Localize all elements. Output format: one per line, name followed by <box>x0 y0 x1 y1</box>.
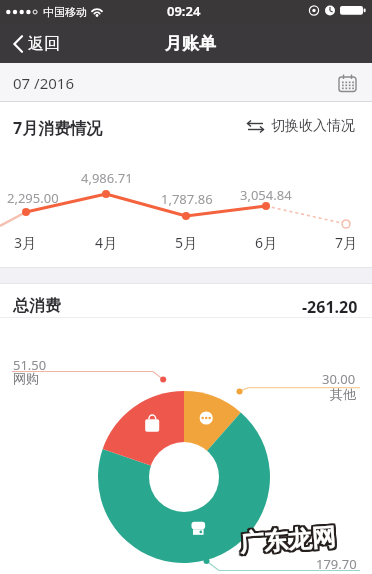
staticText: 7月消费情况 <box>13 117 103 139</box>
staticText: 1,787.86 <box>161 190 213 208</box>
staticText: 179.70 <box>316 555 357 573</box>
button[interactable]: 07 /2016 <box>0 63 372 102</box>
staticText: -261.20 <box>302 296 358 318</box>
staticText: 切换收入情况 <box>271 117 355 135</box>
staticText: 中国移动 <box>43 5 87 19</box>
staticText: 广东龙网 <box>241 521 339 557</box>
staticText: 网购 <box>13 370 39 386</box>
staticText: 7月 <box>335 233 358 252</box>
staticText: 广东龙网 <box>237 524 335 561</box>
staticText: 广东龙网 <box>239 524 337 561</box>
staticText: 07 /2016 <box>13 73 74 93</box>
staticText: 广东龙网 <box>237 520 335 557</box>
button[interactable]: 返回 <box>10 24 60 63</box>
staticText: 其他 <box>330 386 356 402</box>
staticText: 4月 <box>95 233 118 252</box>
staticText: 广东龙网 <box>240 524 338 560</box>
staticText: 广东龙网 <box>241 522 339 558</box>
staticText: 广东龙网 <box>237 522 335 559</box>
staticText: 广东龙网 <box>241 520 339 556</box>
staticText: 广东龙网 <box>237 521 335 558</box>
staticText: 广东龙网 <box>241 523 339 559</box>
staticText: 广东龙网 <box>238 520 336 557</box>
staticText: 2,295.00 <box>7 189 59 207</box>
staticText: 返回 <box>28 34 60 54</box>
staticText: 广东龙网 <box>239 520 337 557</box>
staticText: 3,054.84 <box>240 186 292 204</box>
staticText: 30.00 <box>322 370 356 388</box>
staticText: 广东龙网 <box>240 520 338 556</box>
staticText: 09:24 <box>167 2 201 18</box>
staticText: 广东龙网 <box>237 523 335 560</box>
staticText: 广东龙网 <box>239 522 337 559</box>
staticText: 广东龙网 <box>241 524 339 560</box>
staticText: 3月 <box>14 233 37 252</box>
staticText: 6月 <box>255 233 278 252</box>
staticText: 总消费 <box>13 296 61 316</box>
staticText: 广东龙网 <box>238 524 336 561</box>
staticText: 4,986.71 <box>81 169 133 187</box>
button[interactable]: 切换收入情况 <box>246 116 355 136</box>
staticText: 51.50 <box>13 356 47 374</box>
staticText: 月账单 <box>165 33 216 54</box>
staticText: 5月 <box>175 233 198 252</box>
